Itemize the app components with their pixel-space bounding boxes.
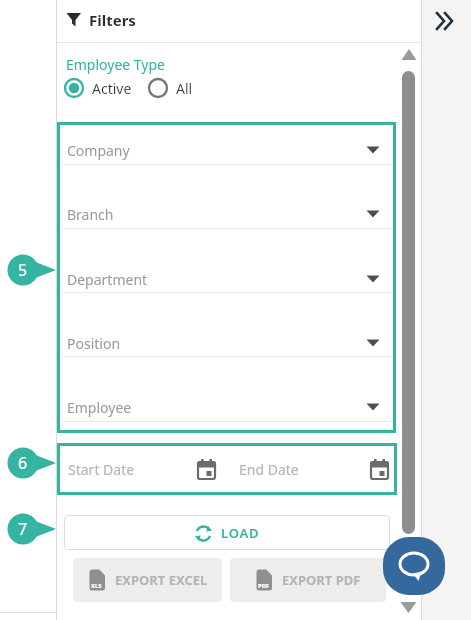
button[interactable]: XLS [73,558,222,602]
staticText: EXPORT PDF [282,571,361,589]
staticText: Branch [67,205,114,224]
staticText: EXPORT EXCEL [115,571,208,589]
staticText: End Date [239,460,299,479]
button[interactable]: Active [64,77,132,99]
button[interactable]: Company [62,136,392,164]
staticText: Company [67,141,130,160]
staticText: LOAD [221,524,260,542]
button[interactable] [431,8,459,34]
staticText: 5 [18,259,28,281]
button[interactable]: Start Date [60,446,394,492]
button[interactable]: Employee [62,393,392,421]
button[interactable]: LOAD [64,515,390,550]
staticText: PDF [258,582,270,590]
button[interactable]: 5 [6,253,58,287]
button[interactable]: 6 [6,446,58,480]
staticText: Start Date [68,460,135,479]
staticText: Department [67,270,148,289]
button[interactable]: 7 [6,512,58,546]
staticText: XLS [91,582,102,590]
button[interactable] [383,537,445,595]
button[interactable]: Branch [62,200,392,228]
button[interactable]: Position [62,329,392,357]
button[interactable]: Department [62,265,392,293]
button[interactable]: All [148,77,193,99]
button[interactable]: PDF [230,558,386,602]
staticText: 6 [18,452,28,474]
staticText: Position [67,334,121,353]
staticText: Active [92,79,132,98]
staticText: Filters [89,10,136,30]
button[interactable]: Filters [66,6,136,34]
staticText: Employee Type [66,55,166,74]
staticText: All [176,79,193,98]
staticText: 7 [18,518,28,540]
staticText: Employee [67,398,132,417]
